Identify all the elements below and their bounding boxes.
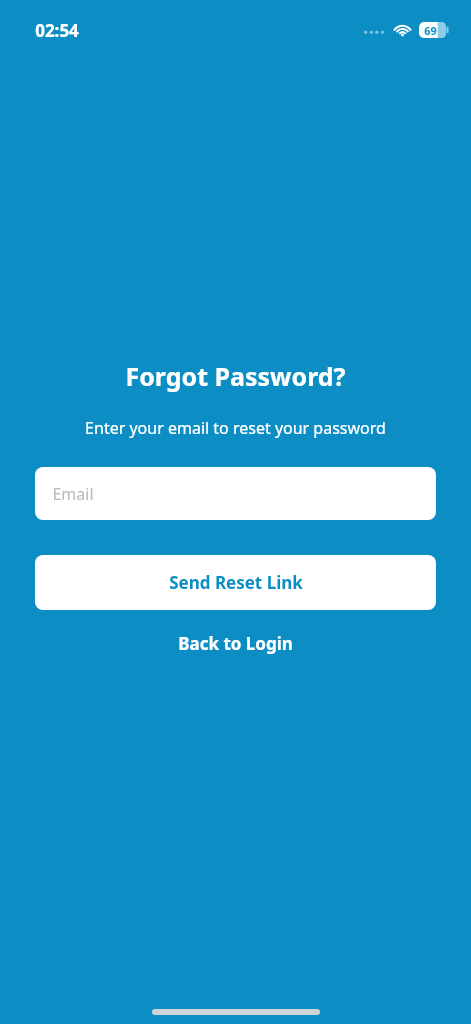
button[interactable]: Send Reset Link [35,555,436,610]
staticText: Forgot Password? [125,359,346,393]
staticText: 69 [424,23,437,38]
staticText: Back to Login [178,632,293,655]
staticText: Enter your email to reset your password [85,417,386,439]
staticText: Send Reset Link [169,571,303,594]
staticText: Email [52,483,94,505]
staticText: 02:54 [35,19,79,42]
button[interactable]: Email [35,467,436,520]
button[interactable]: Back to Login [158,622,313,665]
